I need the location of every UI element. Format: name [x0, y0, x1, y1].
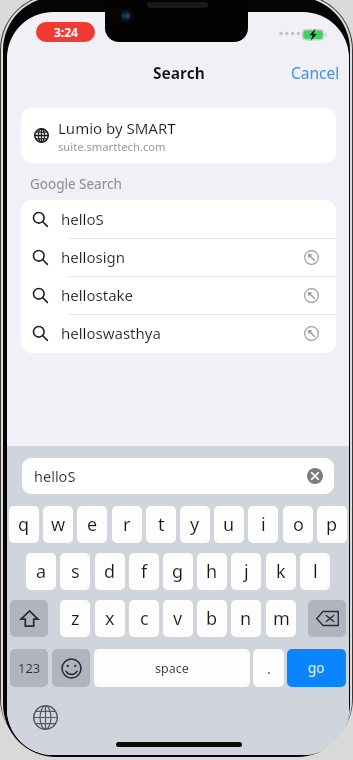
- button[interactable]: .: [253, 649, 284, 687]
- button[interactable]: k: [266, 553, 296, 590]
- staticText: z: [71, 606, 80, 631]
- button[interactable]: Change keyboard: [33, 705, 58, 730]
- staticText: 123: [18, 659, 41, 677]
- button[interactable]: i: [248, 506, 278, 543]
- button[interactable]: go: [287, 649, 346, 687]
- button[interactable]: c: [129, 600, 159, 637]
- staticText: o: [293, 512, 304, 537]
- staticText: Google Search: [30, 175, 122, 193]
- button[interactable]: n: [231, 600, 261, 637]
- button[interactable]: s: [60, 553, 90, 590]
- button[interactable]: helloS: [21, 200, 336, 238]
- button[interactable]: f: [129, 553, 159, 590]
- staticText: i: [261, 512, 266, 537]
- staticText: b: [206, 606, 218, 631]
- staticText: suite.smarttech.com: [58, 139, 166, 154]
- button[interactable]: 123: [10, 649, 48, 687]
- staticText: .: [267, 659, 271, 678]
- button[interactable]: l: [300, 553, 330, 590]
- staticText: g: [172, 559, 184, 584]
- staticText: helloswasthya: [61, 323, 161, 343]
- button[interactable]: o: [283, 506, 313, 543]
- staticText: r: [123, 512, 131, 537]
- staticText: a: [36, 559, 47, 584]
- button[interactable]: d: [95, 553, 125, 590]
- button[interactable]: e: [77, 506, 107, 543]
- staticText: helloS: [61, 209, 104, 229]
- staticText: m: [273, 606, 290, 631]
- button[interactable]: hellostake: [21, 276, 336, 314]
- staticText: c: [140, 606, 149, 631]
- button[interactable]: h: [197, 553, 227, 590]
- staticText: k: [276, 559, 286, 584]
- staticText: y: [190, 512, 200, 537]
- button[interactable]: helloswasthya: [21, 314, 336, 352]
- staticText: l: [313, 559, 318, 584]
- button[interactable]: t: [146, 506, 176, 543]
- staticText: p: [326, 512, 338, 537]
- staticText: helloS: [34, 466, 76, 486]
- button[interactable]: g: [163, 553, 193, 590]
- button[interactable]: Clear text: [307, 468, 323, 484]
- button[interactable]: Backspace: [308, 600, 346, 637]
- staticText: s: [71, 559, 80, 584]
- staticText: e: [87, 512, 98, 537]
- staticText: hellostake: [61, 285, 134, 305]
- staticText: v: [173, 606, 183, 631]
- button[interactable]: helloS: [22, 458, 334, 494]
- staticText: d: [104, 559, 116, 584]
- staticText: n: [240, 606, 252, 631]
- button[interactable]: space: [94, 649, 250, 687]
- button[interactable]: b: [197, 600, 227, 637]
- button[interactable]: y: [180, 506, 210, 543]
- button[interactable]: w: [43, 506, 73, 543]
- staticText: f: [141, 559, 148, 584]
- staticText: u: [223, 512, 235, 537]
- button[interactable]: a: [26, 553, 56, 590]
- button[interactable]: u: [214, 506, 244, 543]
- button[interactable]: z: [60, 600, 90, 637]
- button[interactable]: q: [9, 506, 39, 543]
- button[interactable]: v: [163, 600, 193, 637]
- staticText: j: [244, 559, 249, 584]
- staticText: Search: [153, 62, 205, 83]
- button[interactable]: m: [266, 600, 296, 637]
- staticText: Lumio by SMART: [58, 118, 176, 138]
- staticText: x: [105, 606, 115, 631]
- staticText: hellosign: [61, 247, 126, 267]
- staticText: space: [155, 660, 189, 677]
- button[interactable]: r: [112, 506, 142, 543]
- staticText: q: [18, 512, 30, 537]
- button[interactable]: Shift: [10, 600, 48, 637]
- staticText: w: [51, 512, 66, 537]
- staticText: 3:24: [54, 24, 78, 40]
- button[interactable]: Emoji: [52, 649, 90, 687]
- staticText: go: [308, 659, 325, 677]
- button[interactable]: x: [95, 600, 125, 637]
- staticText: t: [158, 512, 165, 537]
- button[interactable]: j: [231, 553, 261, 590]
- button[interactable]: Cancel: [285, 57, 346, 88]
- button[interactable]: p: [317, 506, 347, 543]
- staticText: Cancel: [291, 62, 340, 83]
- staticText: h: [206, 559, 218, 584]
- button[interactable]: hellosign: [21, 238, 336, 276]
- button[interactable]: Lumio by SMART: [21, 108, 336, 163]
